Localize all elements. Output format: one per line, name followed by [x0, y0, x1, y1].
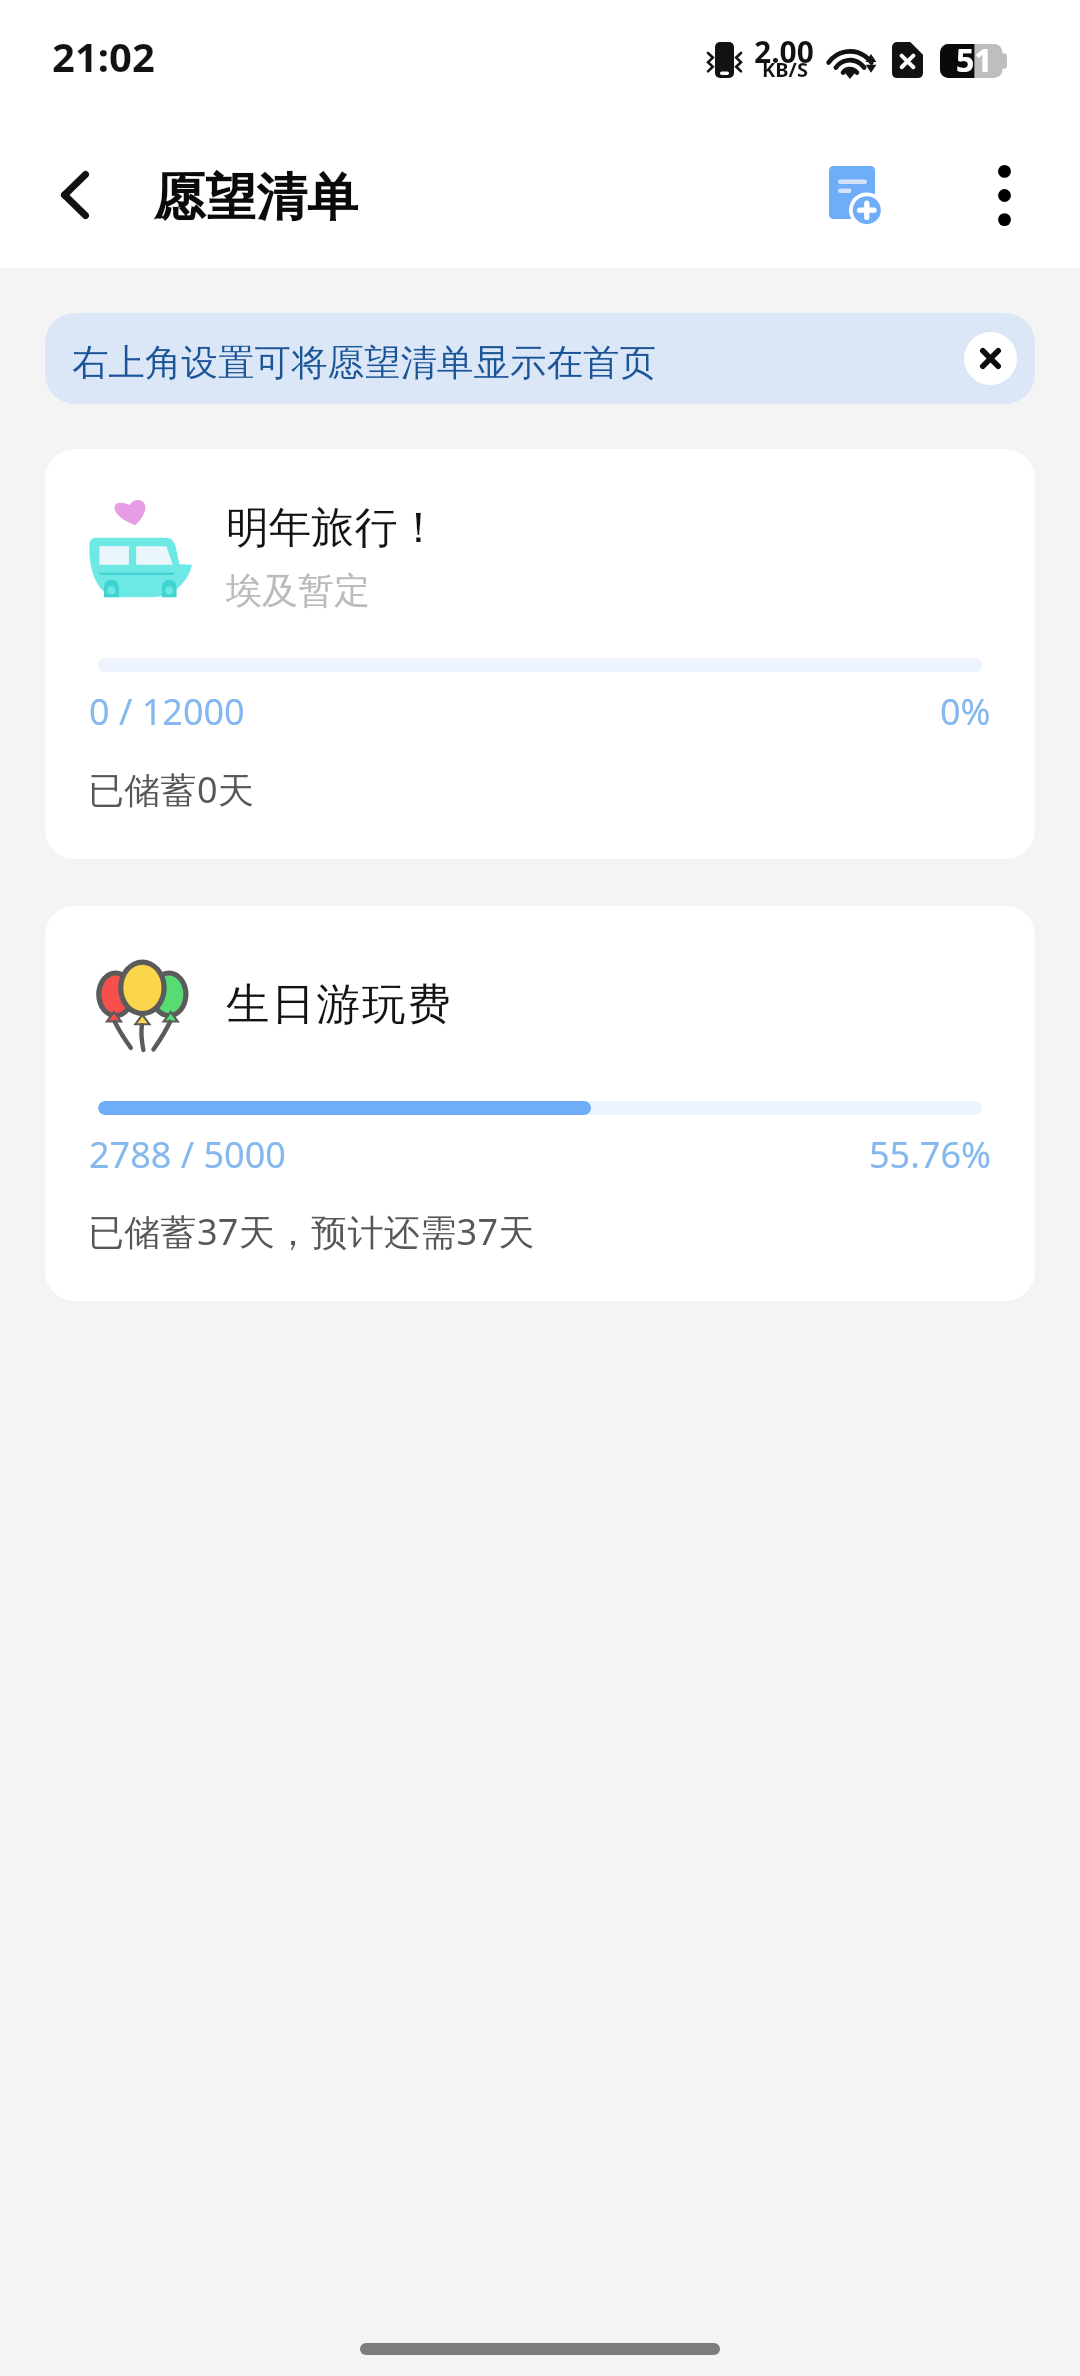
staticText: 55.76% — [869, 1130, 991, 1179]
button[interactable]: More options — [944, 130, 1064, 260]
staticText: 明年旅行！ — [226, 501, 440, 555]
staticText: KB/S — [762, 56, 808, 83]
staticText: 已储蓄37天，预计还需37天 — [88, 1207, 535, 1256]
staticText: 0% — [940, 687, 991, 736]
button[interactable]: 明年旅行！ — [45, 449, 1035, 859]
staticText: 埃及暂定 — [226, 568, 370, 613]
staticText: 0 / 12000 — [89, 687, 245, 736]
staticText: 2.00 — [754, 31, 814, 72]
button[interactable]: 生日游玩费 — [45, 906, 1035, 1301]
button[interactable]: 右上角设置可将愿望清单显示在首页 — [45, 313, 1035, 404]
staticText: 生日游玩费 — [226, 977, 453, 1032]
button[interactable]: Add wish — [790, 136, 920, 256]
staticText: 已储蓄0天 — [88, 765, 255, 814]
staticText: 2788 / 5000 — [89, 1130, 286, 1179]
staticText: 21:02 — [52, 29, 155, 83]
button[interactable]: Dismiss — [964, 332, 1017, 385]
staticText: 愿望清单 — [154, 166, 358, 230]
staticText: 右上角设置可将愿望清单显示在首页 — [72, 340, 656, 386]
button[interactable]: Back — [14, 125, 136, 265]
staticText: 51 — [956, 38, 993, 72]
